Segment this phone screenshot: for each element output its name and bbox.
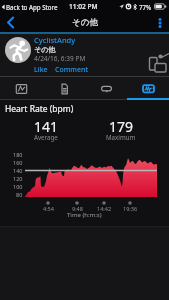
staticText: 141 — [34, 117, 59, 136]
button[interactable]: Back — [0, 13, 20, 32]
staticText: 179 — [109, 117, 134, 136]
staticText: Maximum — [106, 133, 136, 141]
button[interactable]: Like — [34, 65, 48, 75]
staticText: Back to App Store — [6, 3, 58, 11]
staticText: 4/24/16, 6:39 PM — [34, 54, 86, 63]
button[interactable]: CyclistAndy — [34, 35, 76, 45]
button[interactable]: Heart rate — [127, 77, 169, 100]
staticText: 120 — [13, 175, 23, 182]
staticText: 180 — [13, 151, 23, 158]
staticText: 11:02 PM — [69, 2, 98, 11]
button[interactable]: Map — [0, 77, 43, 100]
staticText: 160 — [13, 159, 23, 166]
button[interactable]: Share — [147, 52, 169, 74]
staticText: Heart Rate (bpm) — [5, 103, 74, 115]
button[interactable]: Comment — [55, 65, 89, 75]
staticText: 77% — [139, 3, 152, 11]
button[interactable]: Profile picture — [5, 37, 31, 63]
button[interactable]: Laps — [85, 77, 127, 100]
staticText: Average — [34, 133, 58, 141]
staticText: 19:36 — [123, 205, 138, 212]
staticText: その他 — [34, 45, 56, 54]
staticText: 80 — [16, 191, 23, 198]
button[interactable]: More options — [151, 13, 169, 32]
staticText: 140 — [13, 167, 23, 174]
button[interactable]: Details — [43, 77, 85, 100]
staticText: 14:42 — [97, 205, 112, 212]
staticText: 9:48 — [72, 205, 83, 212]
staticText: 4:54 — [43, 205, 54, 212]
staticText: Time (h:m:s) — [67, 211, 102, 219]
staticText: その他 — [72, 17, 98, 28]
staticText: 100 — [13, 183, 23, 190]
